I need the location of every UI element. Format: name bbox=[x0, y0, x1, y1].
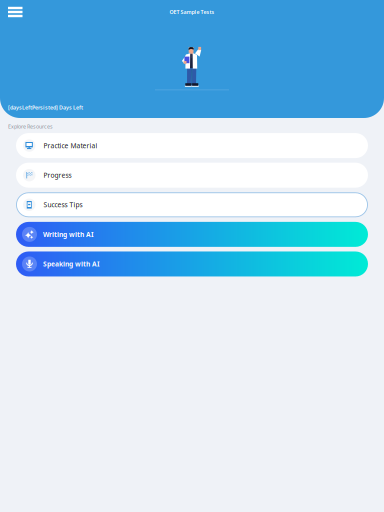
staticText: Writing with AI bbox=[43, 230, 94, 239]
staticText: Speaking with AI bbox=[43, 260, 100, 268]
button[interactable]: Menu bbox=[2, 1, 28, 23]
button[interactable]: Writing with AI bbox=[16, 222, 368, 247]
button[interactable]: Success Tips bbox=[16, 192, 368, 217]
button[interactable]: Progress bbox=[16, 163, 368, 188]
button[interactable]: Speaking with AI bbox=[16, 251, 368, 276]
staticText: Explore Resources bbox=[8, 123, 53, 130]
staticText: [daysLeftPersisted] Days Left bbox=[8, 104, 83, 111]
staticText: Progress bbox=[43, 171, 71, 180]
button[interactable]: Practice Material bbox=[16, 133, 368, 158]
staticText: Success Tips bbox=[43, 200, 82, 209]
staticText: OET Sample Tests bbox=[169, 8, 214, 16]
staticText: Practice Material bbox=[43, 141, 97, 150]
